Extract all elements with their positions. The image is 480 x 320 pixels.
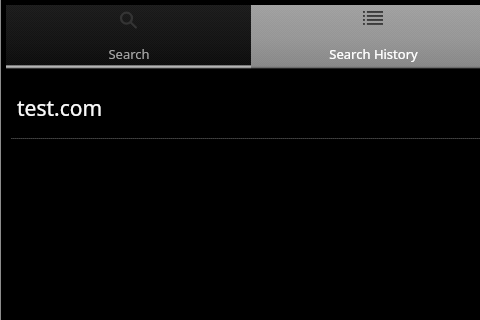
staticText: Search [108,45,150,63]
button[interactable]: test.com [0,69,480,139]
button[interactable]: Search History [251,5,480,69]
other: Search History [363,11,383,25]
staticText: test.com [17,94,103,123]
button[interactable]: Search [6,5,251,69]
staticText: Search History [329,45,418,63]
other: Search [119,10,142,30]
